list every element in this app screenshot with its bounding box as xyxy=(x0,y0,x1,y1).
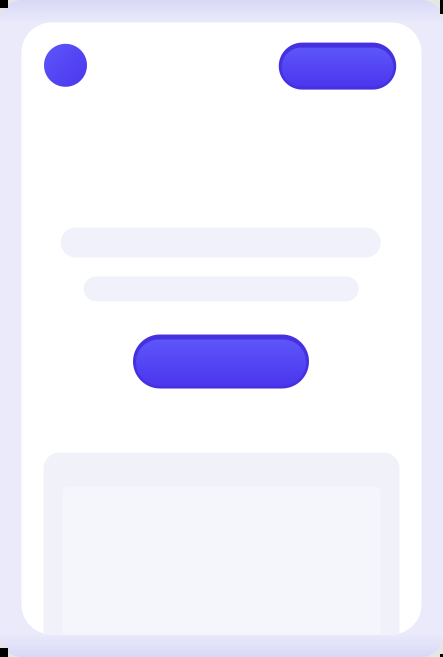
button[interactable]: Continue xyxy=(133,334,309,388)
button[interactable]: Action xyxy=(279,43,396,90)
button[interactable]: Profile xyxy=(44,44,87,87)
